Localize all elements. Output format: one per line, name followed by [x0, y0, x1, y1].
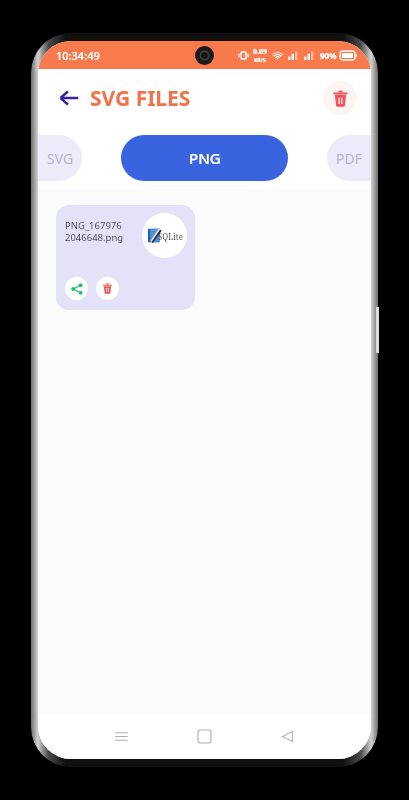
staticText: PNG — [189, 148, 221, 168]
button[interactable]: Home — [163, 714, 246, 759]
button[interactable]: SVG tab — [38, 135, 82, 181]
staticText: PNG_167976 2046648.png — [65, 219, 137, 244]
button[interactable]: Delete all — [323, 81, 357, 115]
button[interactable]: Recents — [80, 714, 163, 759]
staticText: SQLite — [158, 231, 183, 242]
button[interactable]: PDF tab — [327, 135, 371, 181]
button[interactable]: Back — [52, 81, 86, 115]
staticText: PDF — [336, 149, 362, 168]
button[interactable]: Back — [246, 714, 329, 759]
button[interactable]: Delete — [96, 277, 119, 300]
staticText: 90% — [320, 50, 337, 61]
staticText: 0.09 — [253, 47, 267, 57]
staticText: SVG — [47, 149, 74, 168]
button[interactable]: PNG_167976 2046648.png — [56, 205, 195, 310]
button[interactable]: PNG — [121, 135, 288, 181]
staticText: 10:34:49 — [56, 48, 100, 63]
staticText: SVG FILES — [90, 84, 191, 113]
button[interactable]: Share — [65, 277, 88, 300]
staticText: KB/S — [254, 57, 266, 64]
